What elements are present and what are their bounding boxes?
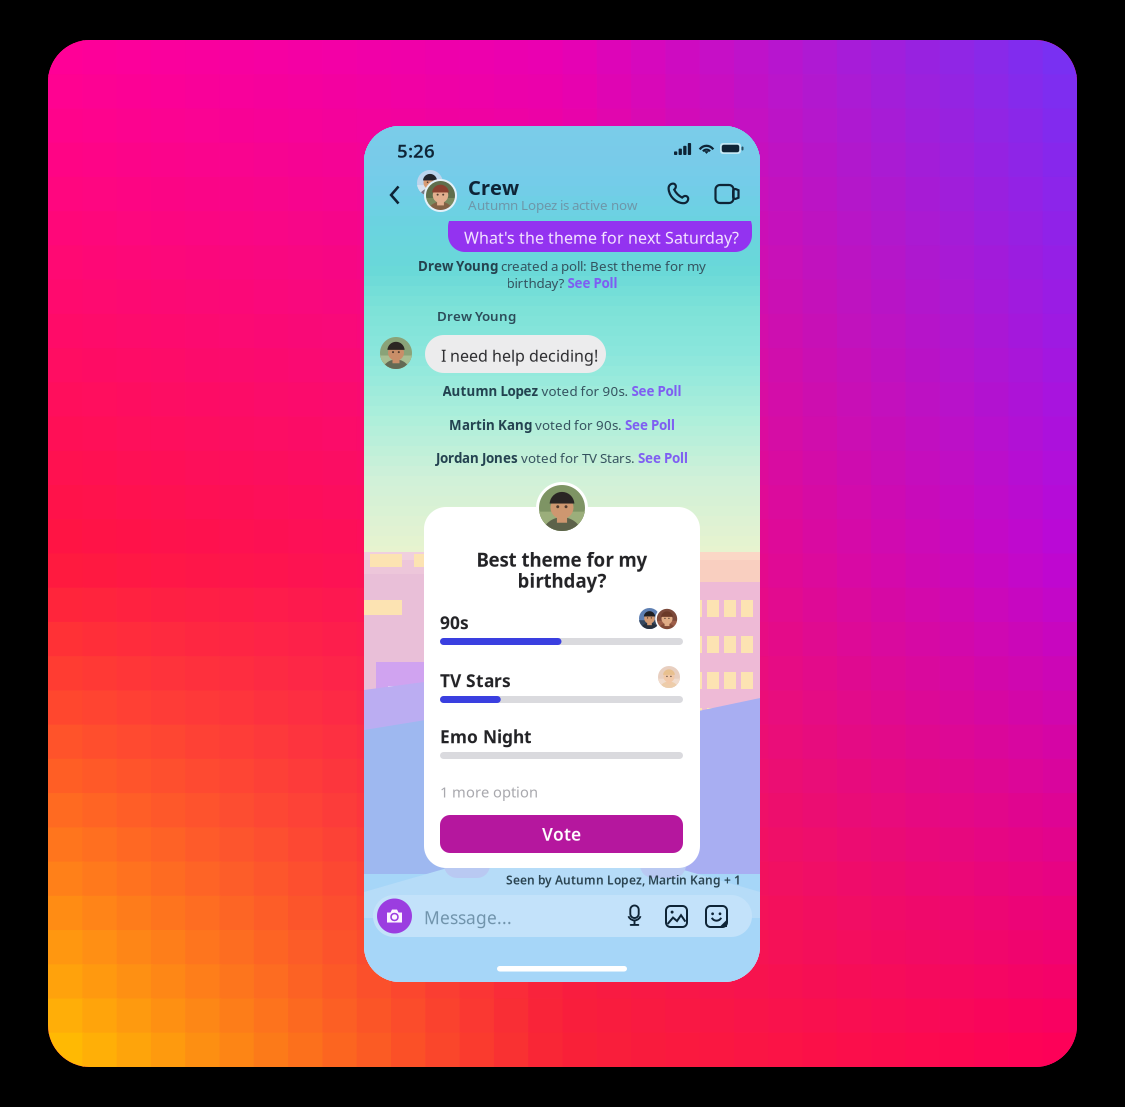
staticText: 1 more option <box>440 782 538 801</box>
staticText: 5:26 <box>397 138 435 163</box>
staticText: TV Stars <box>440 669 511 692</box>
button[interactable]: Stickers <box>706 906 727 927</box>
button[interactable]: Audio call <box>666 181 691 206</box>
button[interactable]: Vote <box>440 815 683 853</box>
staticText: voted for 90s. <box>538 382 631 400</box>
staticText: I need help deciding! <box>441 345 598 366</box>
staticText: What's the theme for next Saturday? <box>464 227 739 248</box>
staticText: See Poll <box>625 416 675 434</box>
staticText: Best theme for my <box>476 547 647 572</box>
staticText: Jordan Jones <box>436 449 518 467</box>
staticText: voted for 90s. <box>532 416 625 434</box>
staticText: birthday? <box>506 274 567 292</box>
staticText: Drew Young <box>437 307 516 325</box>
button[interactable]: Video call <box>715 183 741 205</box>
staticText: 90s <box>440 611 469 634</box>
staticText: See Poll <box>631 382 681 400</box>
staticText: voted for TV Stars. <box>518 449 638 467</box>
staticText: birthday? <box>517 568 606 593</box>
staticText: See Poll <box>567 274 617 292</box>
staticText: See Poll <box>638 449 688 467</box>
staticText: Vote <box>542 822 581 845</box>
button[interactable]: Photo <box>666 906 687 927</box>
staticText: Seen by Autumn Lopez, Martin Kang + 1 <box>506 872 741 888</box>
staticText: Emo Night <box>440 725 532 748</box>
button[interactable]: Back <box>383 181 407 209</box>
staticText: Message... <box>424 906 512 929</box>
button[interactable]: Voice message <box>626 905 643 926</box>
staticText: Drew Young <box>418 257 498 275</box>
staticText: created a poll: Best theme for my <box>498 257 706 275</box>
button[interactable]: Message... <box>373 895 752 937</box>
staticText: Autumn Lopez <box>442 382 538 400</box>
staticText: Crew <box>468 174 519 201</box>
staticText: Martin Kang <box>449 416 532 434</box>
staticText: Autumn Lopez is active now <box>468 196 637 214</box>
